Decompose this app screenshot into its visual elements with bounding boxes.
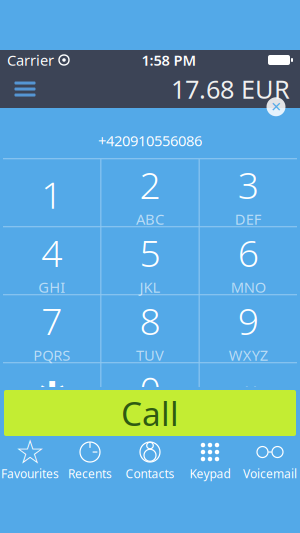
staticText: 0 xyxy=(139,365,160,414)
staticText: Carrier xyxy=(7,50,54,70)
staticText: ABC xyxy=(136,209,164,229)
staticText: 1:58 PM xyxy=(141,50,196,70)
button[interactable]: ✱ xyxy=(3,363,100,430)
button[interactable]: Keypad xyxy=(180,439,240,483)
staticText: 8 xyxy=(139,296,160,345)
button[interactable]: 17.68 EUR xyxy=(161,70,300,108)
button[interactable]: Delete xyxy=(256,91,296,123)
button[interactable]: 0 xyxy=(101,363,199,430)
staticText: MNO xyxy=(231,277,266,297)
staticText: 7 xyxy=(41,296,62,345)
staticText: 5 xyxy=(139,228,160,277)
staticText: 6 xyxy=(238,228,259,277)
button[interactable]: 3 xyxy=(200,159,297,226)
staticText: WXYZ xyxy=(229,345,268,365)
staticText: Call xyxy=(121,391,179,435)
staticText: 3 xyxy=(238,160,259,209)
staticText: DEF xyxy=(235,209,262,229)
staticText: 2 xyxy=(139,160,160,209)
staticText: +420910556086 xyxy=(98,131,202,150)
staticText: # xyxy=(236,373,260,423)
button[interactable]: Recents xyxy=(60,439,120,483)
button[interactable]: 1 xyxy=(3,159,100,226)
button[interactable]: 8 xyxy=(101,295,199,362)
staticText: ☆ xyxy=(15,433,45,471)
staticText: TUV xyxy=(136,345,164,365)
staticText: 1 xyxy=(41,169,62,219)
button[interactable]: 5 xyxy=(101,227,199,294)
button[interactable]: Call xyxy=(4,390,296,436)
staticText: Favourites xyxy=(1,465,59,481)
button[interactable]: ☆ xyxy=(0,439,60,483)
staticText: ✱ xyxy=(36,374,67,417)
staticText: GHI xyxy=(38,277,65,297)
staticText: ✕ xyxy=(270,99,281,114)
staticText: Keypad xyxy=(189,465,230,481)
button[interactable]: Contacts xyxy=(120,439,180,483)
staticText: Voicemail xyxy=(243,465,297,481)
staticText: 17.68 EUR xyxy=(171,72,290,106)
staticText: JKL xyxy=(139,277,160,297)
button[interactable]: 7 xyxy=(3,295,100,362)
button[interactable]: 4 xyxy=(3,227,100,294)
staticText: 4 xyxy=(41,228,62,277)
staticText: Recents xyxy=(68,465,112,481)
button[interactable]: 9 xyxy=(200,295,297,362)
staticText: Contacts xyxy=(125,465,174,481)
button[interactable]: Menu xyxy=(0,70,50,108)
button[interactable]: # xyxy=(200,363,297,430)
staticText: 9 xyxy=(238,296,259,345)
staticText: PQRS xyxy=(33,345,70,365)
staticText: + xyxy=(146,414,154,432)
button[interactable]: Voicemail xyxy=(240,439,300,483)
button[interactable]: 6 xyxy=(200,227,297,294)
button[interactable]: 2 xyxy=(101,159,199,226)
